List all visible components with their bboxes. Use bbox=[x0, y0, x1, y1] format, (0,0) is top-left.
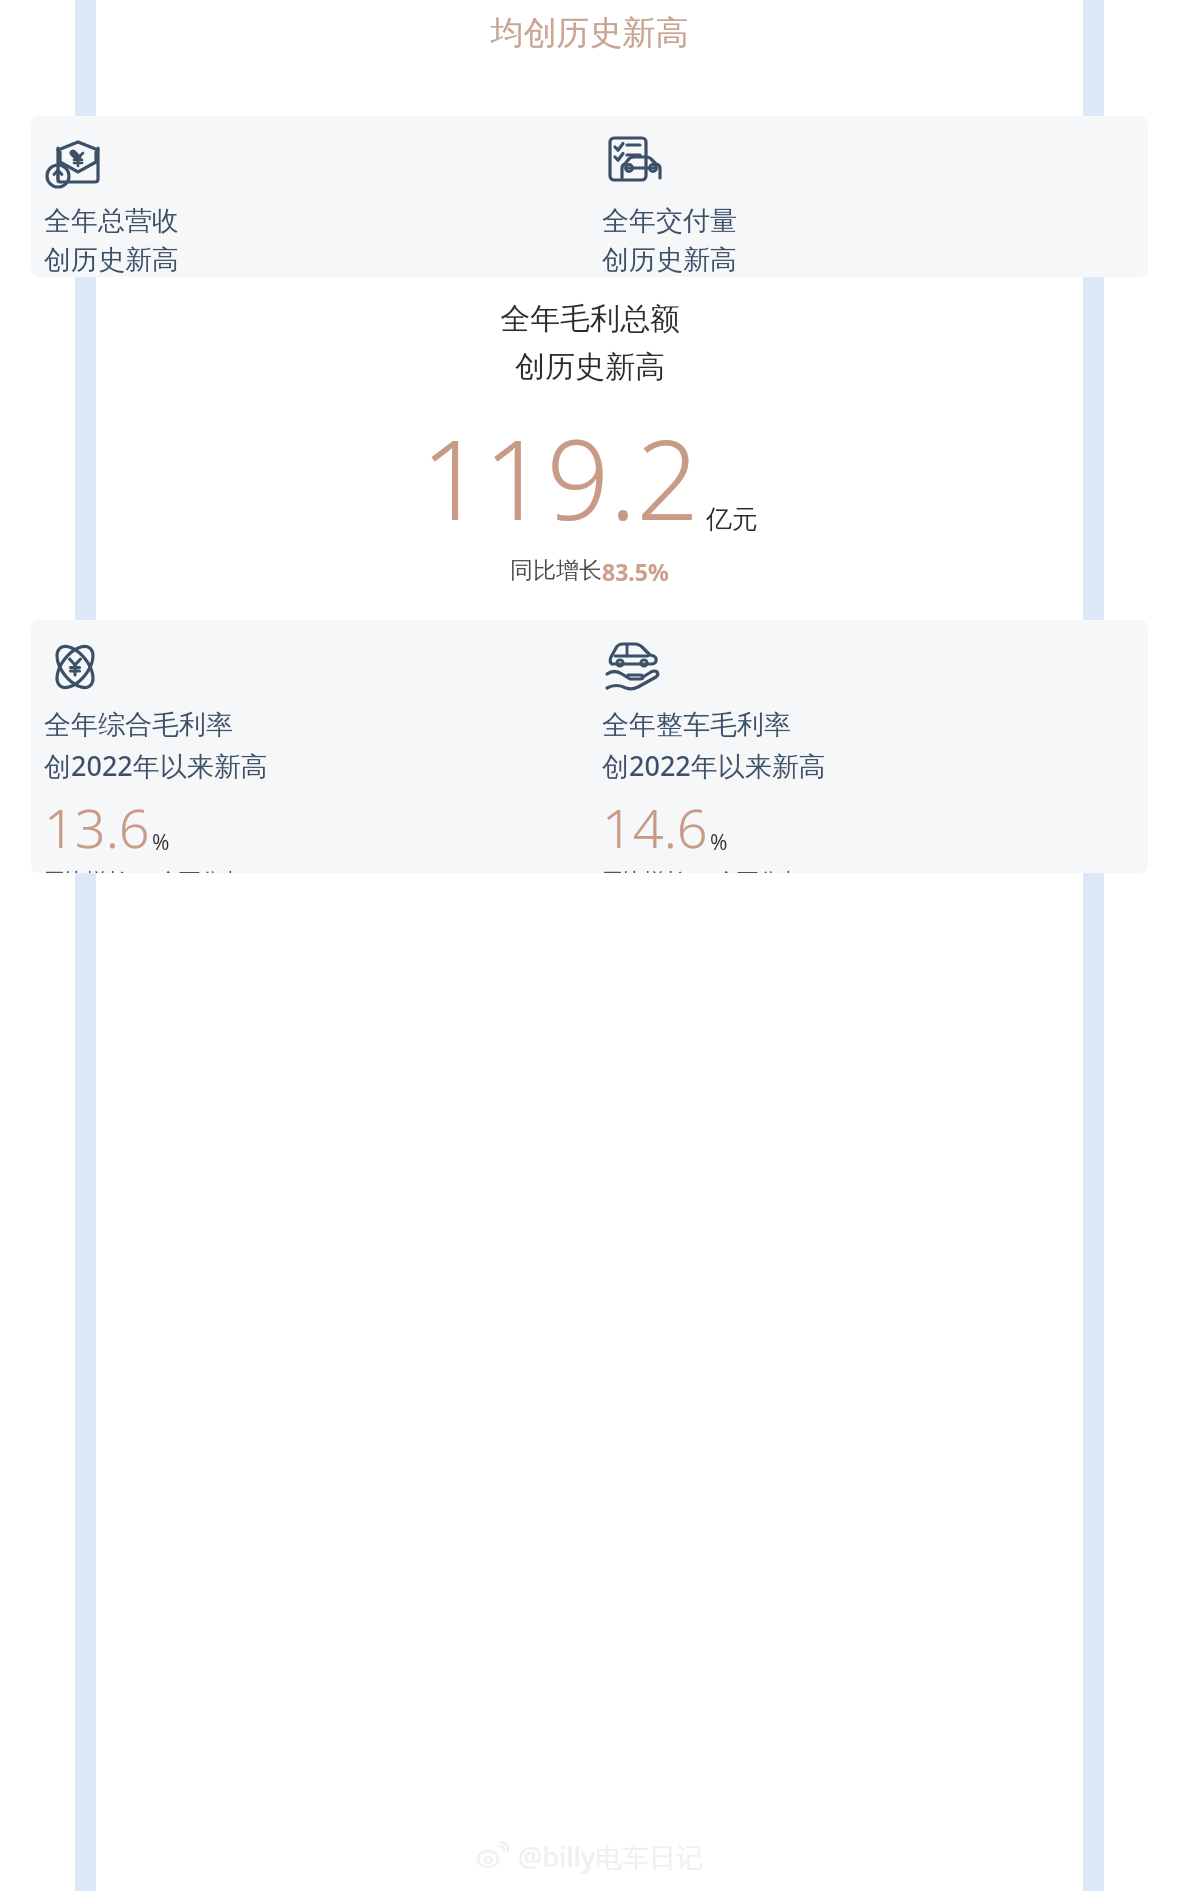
staticText: % bbox=[710, 828, 728, 857]
staticText: 同比增长 bbox=[602, 868, 686, 873]
button[interactable]: 全年总营收 bbox=[31, 116, 1148, 277]
staticText: 均创历史新高 bbox=[0, 12, 1179, 54]
staticText: 全年交付量 bbox=[602, 204, 737, 238]
staticText: 119.2 bbox=[421, 402, 700, 552]
staticText: % bbox=[152, 828, 170, 857]
other: 全年交付量 bbox=[602, 132, 1148, 277]
staticText: 全年毛利总额 bbox=[500, 300, 680, 338]
staticText: 同比增长 bbox=[44, 868, 128, 873]
staticText: 创历史新高 bbox=[515, 348, 665, 386]
staticText: 创历史新高 bbox=[602, 243, 737, 277]
staticText: 13.6 bbox=[44, 790, 150, 864]
staticText: 83.5% bbox=[602, 556, 669, 587]
staticText: 个百分点 bbox=[716, 868, 800, 873]
staticText: 全年综合毛利率 bbox=[44, 708, 233, 742]
staticText: 个百分点 bbox=[158, 868, 242, 873]
staticText: 同比增长 bbox=[510, 556, 602, 585]
other: 全年综合毛利率 bbox=[44, 636, 589, 873]
staticText: 创历史新高 bbox=[44, 243, 179, 277]
staticText: @billy电车日记 bbox=[518, 1838, 704, 1875]
button[interactable]: 全年毛利总额 bbox=[0, 300, 1179, 587]
other: 全年总营收 bbox=[44, 132, 589, 277]
staticText: 创2022年以来新高 bbox=[602, 747, 826, 784]
other: 全年整车毛利率 bbox=[602, 636, 1148, 873]
staticText: 创2022年以来新高 bbox=[44, 747, 268, 784]
staticText: 亿元 bbox=[706, 503, 758, 536]
button[interactable]: 全年综合毛利率 bbox=[31, 620, 1148, 873]
staticText: 14.6 bbox=[602, 790, 708, 864]
staticText: 全年总营收 bbox=[44, 204, 179, 238]
staticText: 全年整车毛利率 bbox=[602, 708, 791, 742]
